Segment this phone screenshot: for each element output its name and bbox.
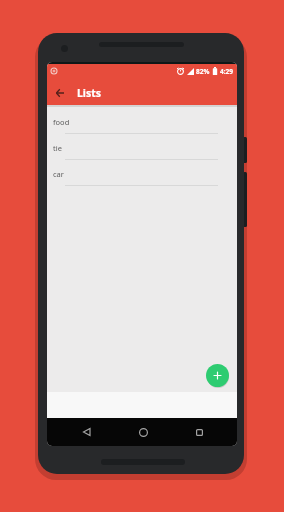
button[interactable] (47, 80, 73, 105)
button[interactable]: food (47, 107, 237, 134)
staticText: car (53, 169, 64, 179)
button[interactable] (185, 418, 213, 446)
staticText: food (53, 117, 70, 127)
button[interactable] (129, 418, 157, 446)
staticText: 82% (196, 67, 210, 76)
button[interactable] (206, 364, 229, 387)
staticText: tie (53, 143, 62, 153)
button[interactable] (73, 418, 101, 446)
staticText: Lists (77, 86, 102, 100)
button[interactable]: tie (47, 134, 237, 160)
button[interactable]: car (47, 160, 237, 186)
staticText: 4:29 (220, 67, 233, 76)
